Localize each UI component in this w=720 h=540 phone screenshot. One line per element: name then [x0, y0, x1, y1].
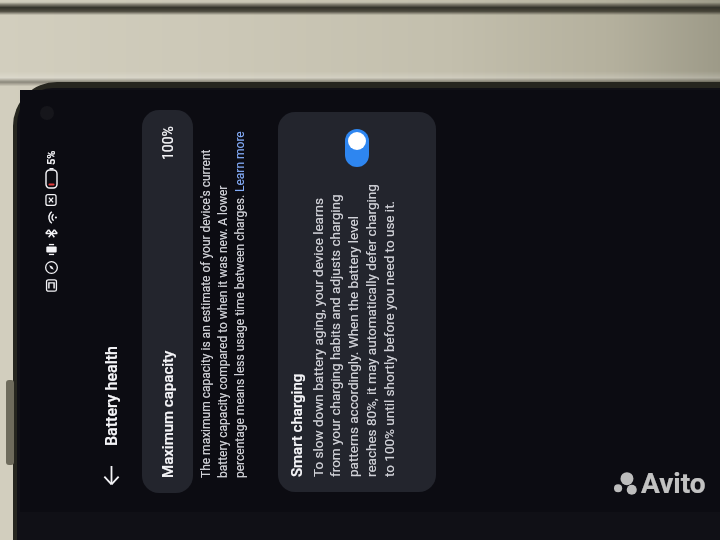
staticText: Maximum capacity	[159, 350, 177, 478]
button[interactable]: Smart charging	[278, 112, 436, 492]
staticText: 100%	[160, 126, 176, 160]
staticText: 5%	[45, 150, 58, 165]
button[interactable]: Maximum capacity	[142, 110, 193, 493]
button[interactable]: Smart charging	[345, 129, 369, 167]
button[interactable]: Back	[93, 458, 129, 494]
staticText: Avito	[641, 467, 706, 500]
staticText: Battery health	[102, 346, 121, 446]
staticText: To slow down battery aging, your device …	[310, 183, 398, 477]
staticText: The maximum capacity is an estimate of y…	[199, 128, 247, 478]
staticText: Smart charging	[288, 373, 306, 477]
